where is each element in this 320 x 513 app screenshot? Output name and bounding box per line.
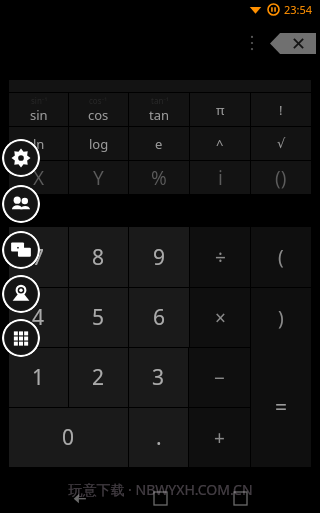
button[interactable]: .	[129, 408, 188, 467]
staticText: )	[278, 305, 284, 331]
staticText: X	[33, 165, 45, 191]
staticText: ()	[275, 165, 287, 191]
button[interactable]: i	[190, 161, 250, 194]
staticText: cos	[88, 106, 109, 124]
staticText: ln	[33, 135, 45, 153]
staticText: 玩意下载 · NBWYXH.COM.CN	[68, 480, 253, 499]
staticText: tan	[149, 106, 170, 124]
button[interactable]: Messages	[2, 231, 40, 269]
staticText: tan⁻¹	[151, 95, 169, 106]
staticText: .	[156, 423, 162, 452]
staticText: −	[214, 365, 225, 391]
button[interactable]: Settings	[2, 139, 40, 177]
button[interactable]: 6	[129, 288, 189, 347]
button[interactable]: sin⁻¹	[9, 93, 68, 126]
button[interactable]: 1	[9, 348, 68, 407]
staticText: 5	[92, 303, 105, 332]
staticText: +	[214, 425, 225, 451]
staticText: cos⁻¹	[89, 95, 108, 106]
staticText: 6	[153, 303, 166, 332]
button[interactable]: Home	[135, 483, 185, 513]
staticText: 4	[32, 303, 45, 332]
staticText: =	[275, 393, 288, 422]
button[interactable]: Back	[55, 483, 105, 513]
button[interactable]: −	[189, 348, 250, 407]
button[interactable]: 8	[69, 227, 128, 287]
button[interactable]: Contacts	[2, 185, 40, 223]
staticText: ×	[215, 305, 226, 331]
button[interactable]: 7	[9, 227, 68, 287]
staticText: 1	[32, 363, 45, 392]
staticText: !	[279, 101, 283, 119]
staticText: 8	[92, 243, 105, 272]
staticText: 3	[152, 363, 165, 392]
button[interactable]: tan⁻¹	[129, 93, 189, 126]
staticText: π	[216, 101, 225, 119]
button[interactable]: =	[251, 347, 311, 467]
button[interactable]: Delete	[270, 33, 316, 54]
staticText: sin	[30, 106, 48, 124]
button[interactable]: (	[251, 227, 311, 287]
button[interactable]: 3	[129, 348, 188, 407]
button[interactable]: 2	[69, 348, 128, 407]
button[interactable]: %	[129, 161, 189, 194]
staticText: Y	[93, 165, 104, 191]
button[interactable]: Location	[2, 275, 40, 313]
button[interactable]: 9	[129, 227, 189, 287]
button[interactable]: All apps	[2, 319, 40, 357]
staticText: 7	[32, 243, 45, 272]
staticText: ^	[216, 135, 224, 153]
button[interactable]: ln	[9, 127, 68, 160]
button[interactable]: 0	[9, 408, 128, 467]
staticText: sin⁻¹	[31, 95, 48, 106]
button[interactable]: e	[129, 127, 189, 160]
button[interactable]: X	[9, 161, 68, 194]
button[interactable]: log	[69, 127, 128, 160]
button[interactable]: ×	[190, 288, 250, 347]
button[interactable]: ^	[190, 127, 250, 160]
staticText: log	[89, 135, 109, 153]
button[interactable]: π	[190, 93, 250, 126]
staticText: i	[218, 165, 223, 191]
button[interactable]: 5	[69, 288, 128, 347]
button[interactable]: More options	[242, 32, 262, 54]
button[interactable]: √	[251, 127, 311, 160]
staticText: √	[277, 136, 286, 151]
button[interactable]: )	[251, 288, 311, 347]
button[interactable]: 4	[9, 288, 68, 347]
button[interactable]: Y	[69, 161, 128, 194]
button[interactable]: Recents	[215, 483, 265, 513]
staticText: 0	[62, 423, 75, 452]
button[interactable]: +	[189, 408, 250, 467]
staticText: (	[278, 244, 284, 270]
staticText: 9	[153, 243, 166, 272]
staticText: %	[151, 165, 167, 191]
staticText: ÷	[215, 244, 226, 270]
staticText: 2	[92, 363, 105, 392]
staticText: 23:54	[284, 2, 313, 17]
staticText: e	[155, 135, 163, 153]
button[interactable]: cos⁻¹	[69, 93, 128, 126]
button[interactable]: !	[251, 93, 311, 126]
button[interactable]: ÷	[190, 227, 250, 287]
button[interactable]: ()	[251, 161, 311, 194]
